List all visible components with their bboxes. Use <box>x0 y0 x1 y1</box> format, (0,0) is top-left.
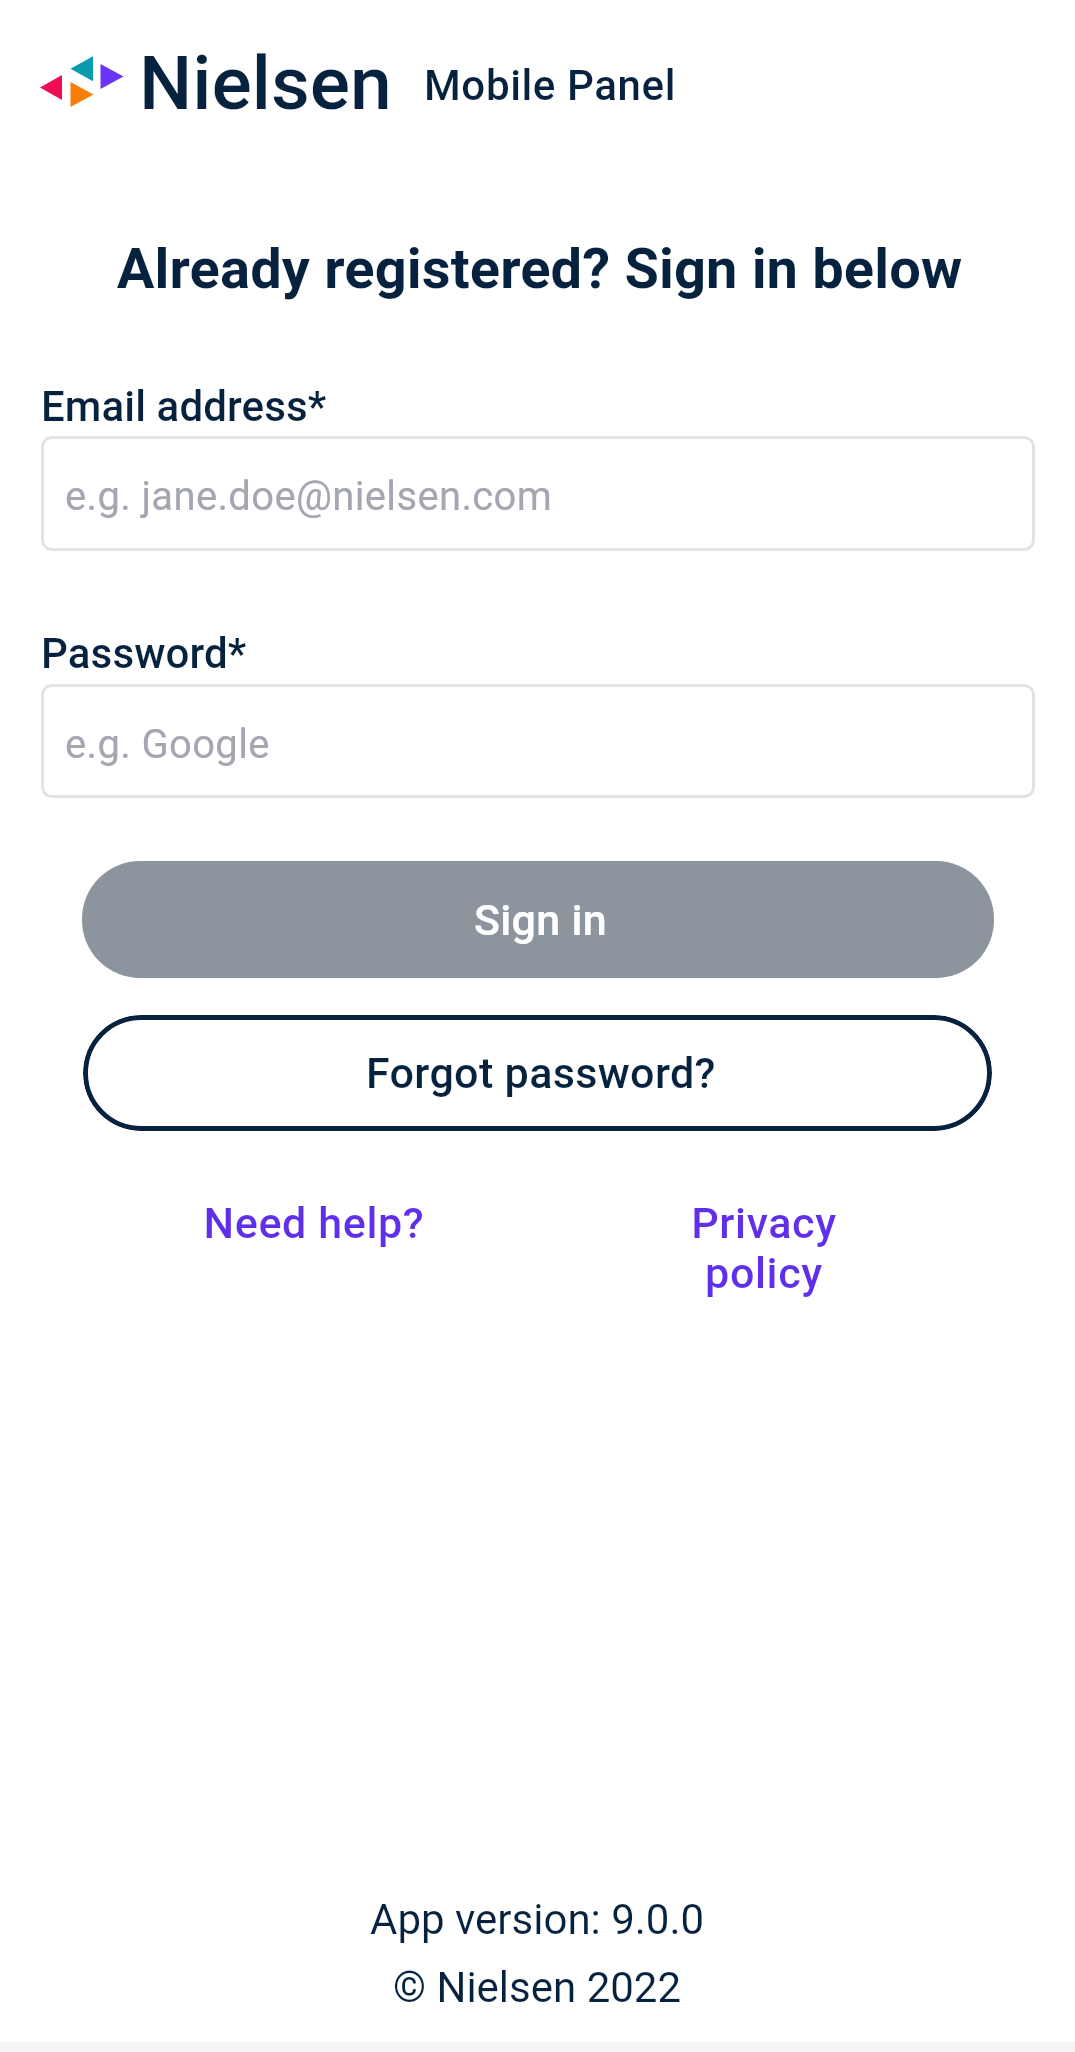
button[interactable]: e.g. jane.doe@nielsen.com <box>41 436 1035 551</box>
staticText: e.g. Google <box>65 721 270 768</box>
staticText: e.g. jane.doe@nielsen.com <box>65 473 553 520</box>
staticText: Email address* <box>41 382 327 431</box>
button[interactable]: Need help? <box>183 1190 443 1256</box>
staticText: Forgot password? <box>366 1048 716 1098</box>
staticText: Mobile Panel <box>424 61 677 110</box>
button[interactable]: Forgot password? <box>83 1015 992 1131</box>
button[interactable]: Privacy policy <box>663 1190 863 1306</box>
staticText: Password* <box>41 629 247 678</box>
button[interactable]: Sign in <box>82 861 994 978</box>
staticText: Already registered? Sign in below <box>2 236 1075 302</box>
other: Nielsen logo <box>34 52 124 108</box>
staticText: Need help? <box>184 1198 444 1248</box>
staticText: App version: 9.0.0 <box>370 1895 705 1944</box>
staticText: Nielsen <box>139 39 392 127</box>
staticText: Sign in <box>474 895 607 945</box>
button[interactable]: e.g. Google <box>41 684 1035 798</box>
staticText: Privacy policy <box>664 1198 864 1298</box>
staticText: © Nielsen 2022 <box>393 1963 682 2012</box>
